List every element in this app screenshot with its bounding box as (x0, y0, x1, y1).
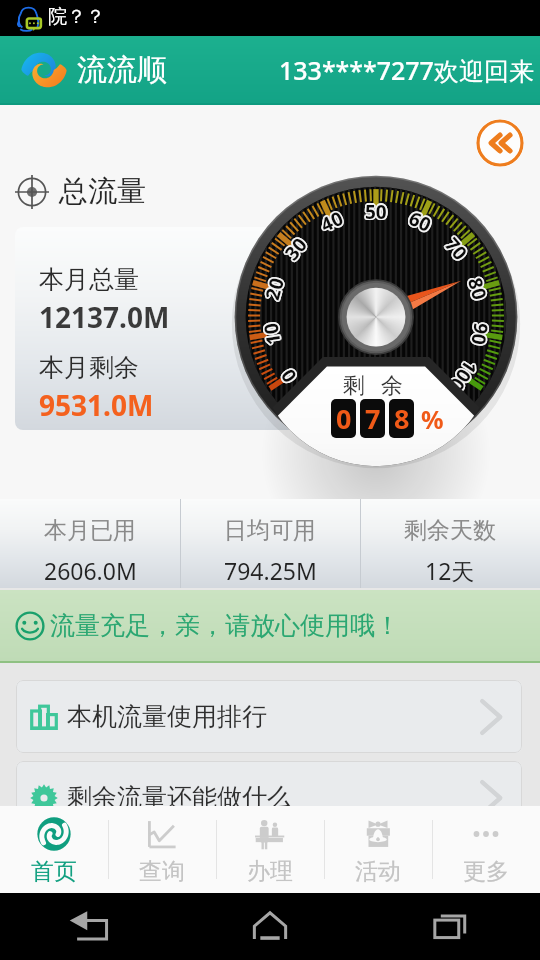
staticText: 活动 (355, 857, 401, 886)
staticText: 12137.0M (39, 298, 170, 336)
staticText: 查询 (139, 857, 185, 886)
staticText: 本月总量 (39, 264, 139, 295)
staticText: 本月剩余 (39, 352, 139, 383)
button[interactable]: 办理 (216, 806, 324, 893)
staticText: 9531.0M (39, 386, 154, 424)
staticText: 794.25M (224, 555, 317, 586)
staticText: 余 (381, 372, 403, 400)
button[interactable]: 剩余天数 (360, 499, 540, 588)
staticText: 0 (336, 400, 352, 437)
button[interactable]: 查询 (108, 806, 216, 893)
button[interactable]: Recents (360, 893, 540, 960)
staticText: 8 (394, 400, 410, 437)
button[interactable]: 更多 (432, 806, 540, 893)
staticText: 更多 (463, 857, 509, 886)
button[interactable]: Home (180, 893, 360, 960)
button[interactable]: 首页 (0, 806, 108, 893)
staticText: 日均可用 (224, 516, 316, 545)
button[interactable]: 本月已用 (0, 499, 180, 588)
button[interactable]: 日均可用 (180, 499, 360, 588)
button[interactable]: 活动 (324, 806, 432, 893)
button[interactable]: 本机流量使用排行 (16, 680, 522, 753)
staticText: 剩 (343, 372, 365, 400)
staticText: 本机流量使用排行 (67, 701, 267, 732)
staticText: 流量充足，亲，请放心使用哦！ (50, 610, 400, 641)
staticText: 首页 (31, 857, 77, 886)
staticText: 院？？ (48, 5, 105, 29)
staticText: 总流量 (59, 173, 146, 210)
staticText: 本月已用 (44, 516, 136, 545)
staticText: 7 (365, 400, 381, 437)
staticText: 12天 (425, 555, 475, 586)
staticText: 办理 (247, 857, 293, 886)
staticText: 剩余天数 (404, 516, 496, 545)
button[interactable]: 剩余流量还能做什么 (16, 761, 522, 834)
staticText: 133****7277欢迎回来 (279, 53, 534, 87)
staticText: 2606.0M (44, 555, 137, 586)
button[interactable]: Back (0, 893, 180, 960)
staticText: 剩余流量还能做什么 (67, 782, 292, 813)
button[interactable]: Back (476, 119, 524, 167)
staticText: % (421, 402, 444, 436)
staticText: 流流顺 (77, 51, 167, 89)
